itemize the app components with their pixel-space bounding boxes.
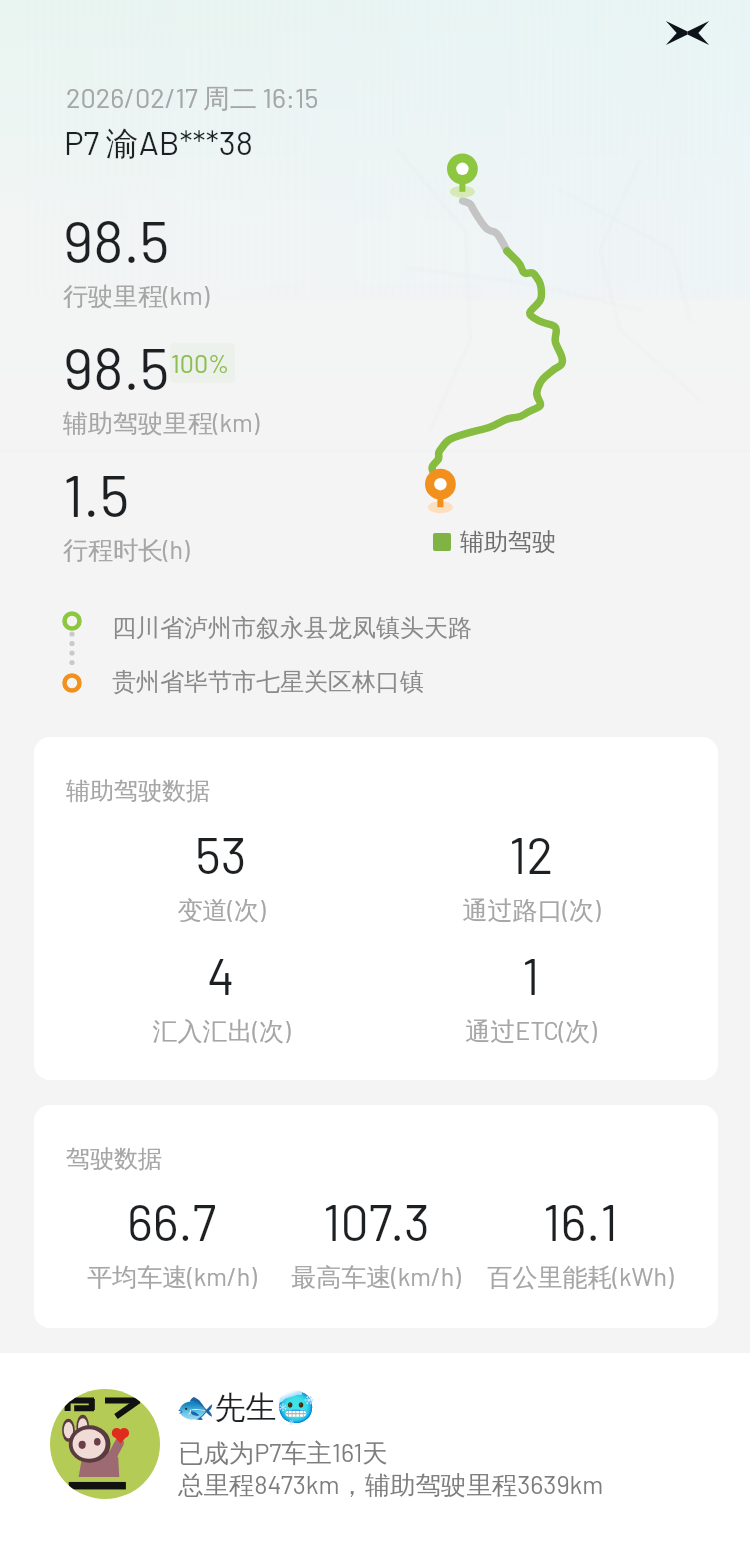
- staticText: 变道(次): [177, 894, 266, 926]
- staticText: 行程时长(h): [63, 534, 190, 566]
- staticText: 98.5: [63, 205, 170, 275]
- staticText: 2026/02/17 周二 16:15: [66, 81, 319, 116]
- button[interactable]: 辅助驾驶数据: [34, 737, 718, 1080]
- staticText: 辅助驾驶数据: [66, 776, 210, 806]
- button[interactable]: 🐟先生🥶: [0, 1353, 750, 1543]
- staticText: 🐟先生🥶: [176, 1388, 316, 1427]
- staticText: 1.5: [63, 459, 130, 529]
- staticText: 贵州省毕节市七星关区林口镇: [112, 667, 424, 697]
- staticText: 汇入汇出(次): [152, 1015, 291, 1047]
- staticText: 百公里能耗(kWh): [487, 1261, 674, 1293]
- staticText: 4: [207, 945, 235, 1005]
- button[interactable]: XPeng logo: [652, 9, 722, 57]
- staticText: 66.7: [127, 1191, 217, 1251]
- staticText: 98.5: [63, 332, 170, 402]
- staticText: 驾驶数据: [66, 1144, 162, 1174]
- staticText: 平均车速(km/h): [87, 1261, 257, 1293]
- staticText: 16.1: [543, 1191, 618, 1251]
- staticText: 最高车速(km/h): [291, 1261, 461, 1293]
- staticText: 107.3: [323, 1191, 430, 1251]
- staticText: 100%: [171, 348, 230, 378]
- staticText: 行驶里程(km): [63, 280, 210, 312]
- button[interactable]: 驾驶数据: [34, 1105, 718, 1328]
- staticText: 通过路口(次): [462, 894, 601, 926]
- staticText: 辅助驾驶里程(km): [63, 407, 260, 439]
- staticText: 已成为P7车主161天: [178, 1437, 388, 1470]
- staticText: 总里程8473km，辅助驾驶里程3639km: [178, 1469, 604, 1502]
- staticText: 1: [522, 945, 540, 1005]
- staticText: P7 渝AB***38: [64, 122, 253, 165]
- staticText: 四川省泸州市叙永县龙凤镇头天路: [112, 613, 472, 643]
- staticText: 通过ETC(次): [465, 1015, 597, 1047]
- staticText: 12: [509, 824, 554, 884]
- staticText: 辅助驾驶: [460, 527, 556, 557]
- staticText: 53: [195, 824, 247, 884]
